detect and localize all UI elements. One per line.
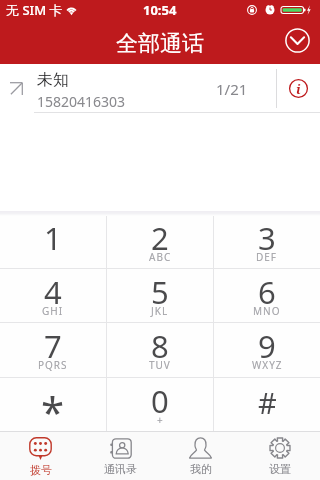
button[interactable]: 7 (0, 323, 106, 377)
staticText: 3 (258, 217, 276, 259)
staticText: + (157, 413, 164, 427)
staticText: 15820416303 (37, 92, 126, 111)
button[interactable]: * (0, 378, 106, 431)
button[interactable]: Expand call list (284, 27, 311, 54)
staticText: 0 (151, 380, 169, 422)
button[interactable]: 2 (107, 216, 213, 268)
staticText: DEF (256, 250, 278, 264)
staticText: WXYZ (252, 358, 283, 372)
staticText: 6 (258, 271, 276, 313)
staticText: 我的 (190, 462, 212, 476)
staticText: 拨号 (30, 463, 52, 477)
staticText: 1/21 (216, 79, 248, 99)
button[interactable]: # (214, 378, 320, 431)
button[interactable]: 未知 (0, 64, 320, 113)
staticText: 10:54 (143, 1, 177, 19)
button[interactable]: 1 (0, 216, 106, 268)
staticText: ABC (149, 250, 172, 264)
button[interactable]: 6 (214, 269, 320, 322)
button[interactable]: 5 (107, 269, 213, 322)
staticText: 4 (44, 271, 62, 313)
staticText: PQRS (38, 358, 68, 372)
staticText: GHI (42, 304, 64, 318)
staticText: * (41, 383, 65, 436)
button[interactable]: 4 (0, 269, 106, 322)
staticText: TUV (149, 358, 171, 372)
staticText: MNO (253, 304, 281, 318)
button[interactable]: Call details (276, 64, 320, 113)
staticText: JKL (151, 304, 169, 318)
staticText: 无 SIM 卡 (6, 1, 63, 19)
staticText: 7 (44, 325, 62, 367)
staticText: 2 (151, 217, 169, 259)
staticText: 未知 (37, 70, 69, 90)
button[interactable]: 我的 (160, 431, 240, 480)
staticText: 9 (258, 325, 276, 367)
staticText: i (296, 80, 301, 98)
button[interactable]: 8 (107, 323, 213, 377)
button[interactable]: 3 (214, 216, 320, 268)
staticText: 5 (151, 271, 169, 313)
button[interactable]: 通讯录 (80, 431, 160, 480)
staticText: 全部通话 (116, 30, 204, 58)
staticText: # (258, 383, 277, 422)
button[interactable]: 9 (214, 323, 320, 377)
staticText: 1 (44, 217, 62, 259)
button[interactable]: 0 (107, 378, 213, 431)
staticText: 8 (151, 325, 169, 367)
button[interactable]: 设置 (240, 431, 320, 480)
button[interactable]: 拨号 (0, 431, 80, 480)
staticText: 通讯录 (104, 462, 137, 476)
staticText: 设置 (269, 462, 291, 476)
